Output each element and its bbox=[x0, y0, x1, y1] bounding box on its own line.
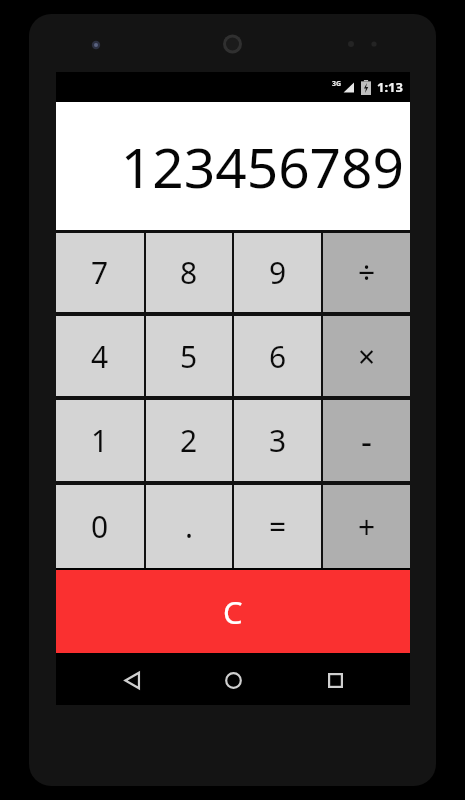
staticText: 1:13 bbox=[377, 78, 403, 96]
button[interactable]: C bbox=[56, 570, 410, 653]
button[interactable]: ÷ bbox=[323, 233, 410, 312]
button[interactable]: = bbox=[234, 485, 321, 568]
button[interactable]: × bbox=[323, 316, 410, 396]
button[interactable]: - bbox=[323, 400, 410, 481]
staticText: × bbox=[358, 336, 376, 377]
button[interactable]: 4 bbox=[56, 316, 144, 396]
staticText: . bbox=[185, 506, 194, 547]
staticText: + bbox=[358, 506, 376, 547]
staticText: C bbox=[223, 591, 243, 633]
button[interactable]: 6 bbox=[234, 316, 321, 396]
staticText: 6 bbox=[269, 336, 287, 377]
button[interactable]: 0 bbox=[56, 485, 144, 568]
button[interactable]: 1 bbox=[56, 400, 144, 481]
staticText: 123456789 bbox=[56, 129, 404, 204]
staticText: 3G bbox=[332, 79, 342, 89]
staticText: 3 bbox=[269, 420, 287, 461]
staticText: 2 bbox=[180, 420, 198, 461]
staticText: 5 bbox=[180, 336, 198, 377]
button[interactable]: 3 bbox=[234, 400, 321, 481]
button[interactable]: Home bbox=[207, 655, 259, 705]
button[interactable]: 7 bbox=[56, 233, 144, 312]
button[interactable]: 9 bbox=[234, 233, 321, 312]
staticText: ÷ bbox=[358, 252, 376, 293]
staticText: 0 bbox=[91, 506, 109, 547]
button[interactable]: 5 bbox=[146, 316, 232, 396]
button[interactable]: Recent apps bbox=[309, 655, 361, 705]
staticText: 7 bbox=[91, 252, 109, 293]
button[interactable]: + bbox=[323, 485, 410, 568]
staticText: - bbox=[361, 418, 372, 464]
button[interactable]: Back bbox=[106, 655, 158, 705]
button[interactable]: . bbox=[146, 485, 232, 568]
staticText: 1 bbox=[91, 420, 109, 461]
button[interactable]: 2 bbox=[146, 400, 232, 481]
button[interactable]: 123456789 bbox=[56, 102, 410, 230]
staticText: = bbox=[269, 506, 287, 547]
staticText: 8 bbox=[180, 252, 198, 293]
button[interactable]: 8 bbox=[146, 233, 232, 312]
staticText: 4 bbox=[91, 336, 109, 377]
staticText: 9 bbox=[269, 252, 287, 293]
